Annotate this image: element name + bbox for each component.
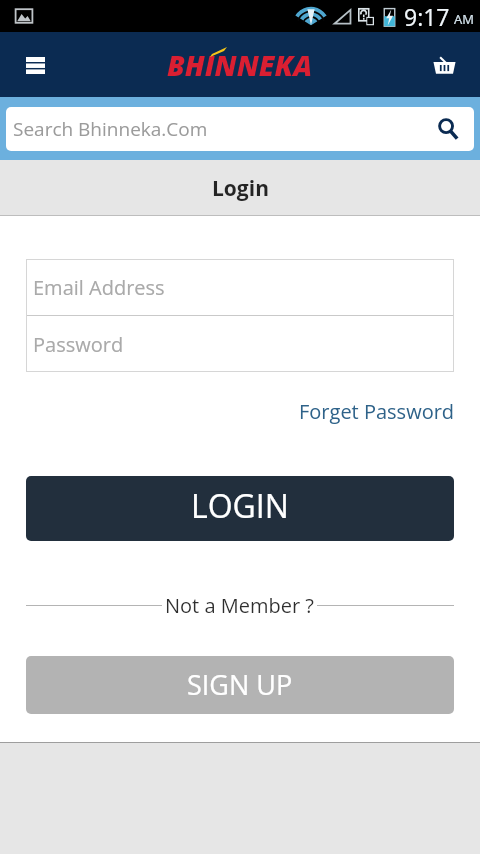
staticText: SIGN UP	[187, 666, 293, 703]
button[interactable]: Shopping cart	[426, 47, 462, 83]
staticText: 9:17	[404, 1, 450, 32]
staticText: Password	[33, 331, 124, 358]
button[interactable]: LOGIN	[26, 476, 454, 541]
button[interactable]: Search Bhinneka.Com	[6, 107, 474, 151]
button[interactable]: Menu	[19, 49, 51, 81]
button[interactable]: Password	[26, 316, 454, 372]
staticText: Not a Member ?	[165, 592, 314, 619]
staticText: Search Bhinneka.Com	[13, 116, 436, 142]
staticText: AM	[454, 10, 474, 28]
button[interactable]: SIGN UP	[26, 656, 454, 714]
staticText: BHINNEKA	[167, 46, 313, 84]
staticText: LOGIN	[191, 484, 289, 528]
button[interactable]: Forget Password	[299, 398, 455, 425]
staticText: Login	[212, 174, 269, 203]
staticText: Email Address	[33, 274, 165, 301]
button[interactable]: Email Address	[26, 259, 454, 315]
